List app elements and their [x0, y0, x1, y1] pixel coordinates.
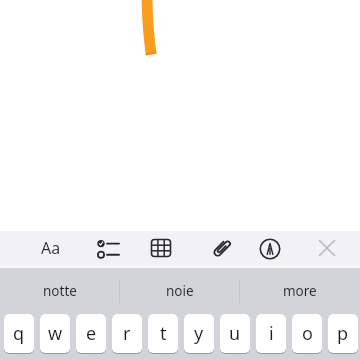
button[interactable] — [91, 231, 125, 265]
staticText: w — [48, 321, 63, 346]
button[interactable]: more — [240, 268, 360, 313]
staticText: i — [269, 321, 274, 346]
button[interactable]: o — [292, 314, 322, 354]
button[interactable]: y — [184, 314, 214, 354]
staticText: p — [337, 321, 349, 346]
button[interactable]: w — [40, 314, 70, 354]
button[interactable]: notte — [0, 268, 120, 313]
staticText: r — [123, 321, 131, 346]
staticText: e — [86, 321, 97, 346]
staticText: q — [13, 321, 25, 346]
staticText: u — [229, 321, 241, 346]
staticText: noie — [166, 282, 194, 300]
button[interactable] — [144, 231, 178, 265]
button[interactable]: i — [256, 314, 286, 354]
button[interactable]: u — [220, 314, 250, 354]
button[interactable]: Aa — [34, 231, 68, 265]
staticText: notte — [43, 282, 77, 300]
staticText: Aa — [41, 237, 61, 259]
staticText: t — [160, 321, 167, 346]
staticText: o — [302, 321, 313, 346]
button[interactable]: noie — [120, 268, 240, 313]
staticText: y — [194, 321, 204, 346]
button[interactable] — [253, 232, 287, 266]
button[interactable]: e — [76, 314, 106, 354]
button[interactable] — [205, 231, 239, 265]
button[interactable]: q — [4, 314, 34, 354]
button[interactable] — [310, 231, 344, 265]
button[interactable]: r — [112, 314, 142, 354]
button[interactable]: t — [148, 314, 178, 354]
button[interactable]: p — [328, 314, 358, 354]
staticText: more — [283, 282, 317, 300]
